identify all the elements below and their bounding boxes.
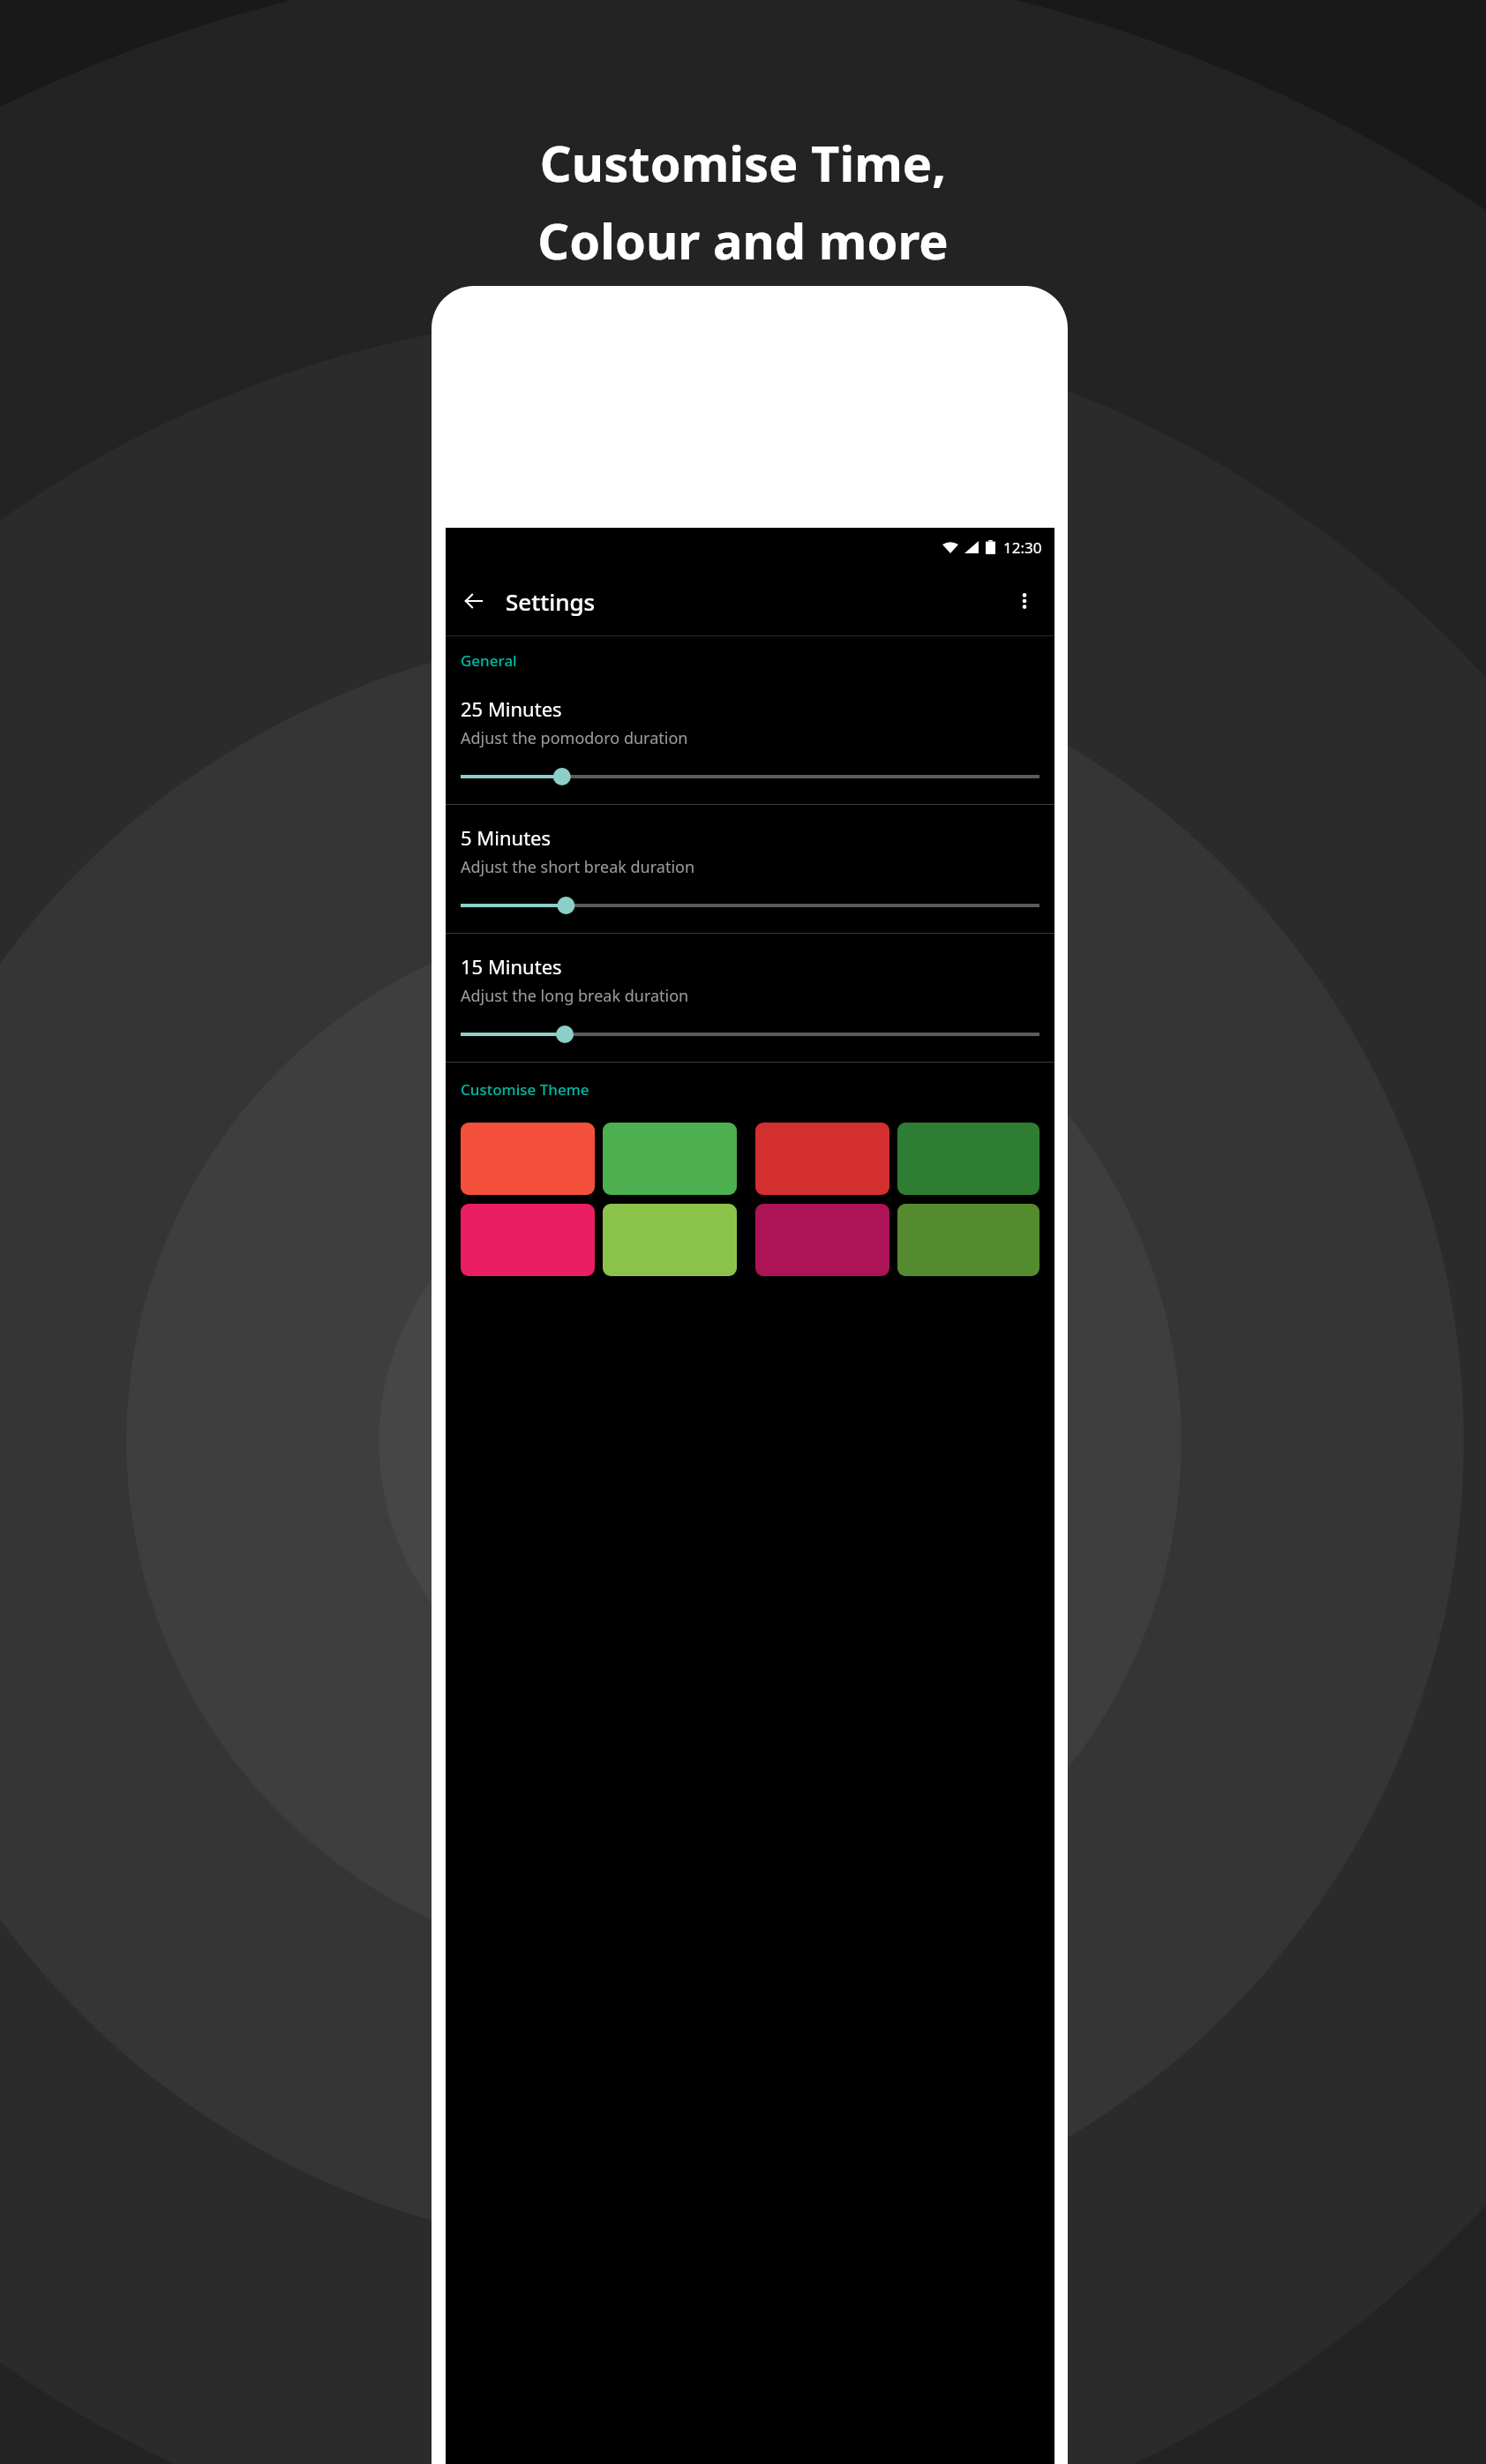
button[interactable]: Theme colour [461,1123,595,1195]
staticText: 15 Minutes [461,953,562,980]
staticText: Adjust the long break duration [461,985,689,1007]
staticText: 12:30 [1003,537,1042,558]
staticText: Customise Time, Colour and more [0,129,1486,274]
button[interactable]: More options [1003,580,1046,622]
button[interactable]: Theme colour [897,1204,1039,1276]
button[interactable]: Theme colour [755,1123,889,1195]
button[interactable]: 15 Minutes [446,934,1054,1062]
staticText: Customise Theme [461,1079,589,1100]
staticText: 25 Minutes [461,695,562,722]
staticText: Settings [506,586,596,617]
staticText: Adjust the pomodoro duration [461,727,688,749]
staticText: General [461,650,517,671]
button[interactable]: Theme colour [603,1123,737,1195]
button[interactable]: Theme colour [603,1204,737,1276]
button[interactable]: 5 Minutes [446,805,1054,933]
button[interactable]: Back [453,580,495,622]
button[interactable]: 25 Minutes [446,694,1054,804]
button[interactable]: Theme colour [461,1204,595,1276]
button[interactable]: Theme colour [755,1204,889,1276]
staticText: 5 Minutes [461,824,552,851]
button[interactable]: Theme colour [897,1123,1039,1195]
staticText: Adjust the short break duration [461,856,695,878]
